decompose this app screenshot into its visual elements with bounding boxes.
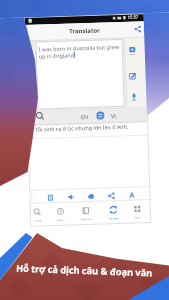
staticText: Hỗ trợ cả dịch câu & đoạn văn bbox=[16, 262, 153, 279]
button[interactable] bbox=[35, 39, 125, 110]
staticText: Translate bbox=[109, 217, 119, 220]
staticText: Translator bbox=[69, 27, 100, 36]
staticText: up in England. bbox=[39, 51, 76, 59]
staticText: I was born in Australia but grew bbox=[39, 43, 120, 52]
button[interactable] bbox=[74, 202, 98, 224]
button[interactable] bbox=[132, 23, 144, 36]
staticText: Dictionary bbox=[81, 218, 92, 221]
staticText: 15:37 bbox=[128, 14, 139, 20]
staticText: VI bbox=[111, 112, 117, 119]
staticText: EN bbox=[81, 113, 89, 120]
button[interactable] bbox=[127, 200, 149, 223]
button[interactable]: VI bbox=[104, 109, 124, 121]
staticText: More bbox=[135, 216, 141, 220]
button[interactable] bbox=[100, 201, 126, 224]
button[interactable]: EN bbox=[75, 110, 95, 122]
staticText: Lookup bbox=[34, 219, 42, 223]
staticText: History bbox=[57, 219, 65, 222]
staticText: Tôi sinh ra ở Úc nhưng lớn lên ở Anh. bbox=[35, 123, 129, 133]
button[interactable] bbox=[30, 203, 50, 226]
button[interactable] bbox=[51, 202, 73, 225]
